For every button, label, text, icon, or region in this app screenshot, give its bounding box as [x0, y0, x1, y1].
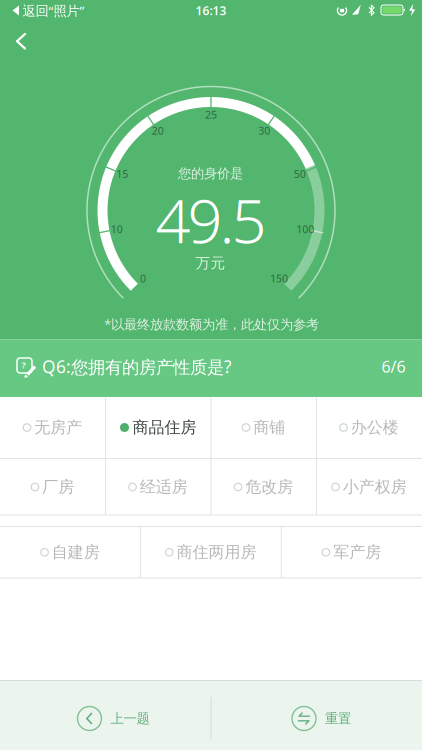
- staticText: 无房产: [34, 418, 82, 437]
- staticText: 万元: [195, 254, 225, 272]
- staticText: 49.5: [155, 179, 266, 260]
- staticText: 小产权房: [343, 477, 407, 497]
- staticText: 0: [140, 271, 146, 285]
- button[interactable]: 小产权房: [317, 459, 422, 515]
- staticText: Q6:您拥有的房产性质是?: [42, 355, 232, 378]
- staticText: 15: [116, 167, 128, 181]
- staticText: 您的身价是: [178, 165, 243, 182]
- button[interactable]: 办公楼: [317, 397, 422, 458]
- button[interactable]: 返回照片: [2, 0, 94, 20]
- staticText: 商品住房: [132, 418, 196, 437]
- staticText: 返回“照片”: [22, 2, 84, 19]
- staticText: 办公楼: [351, 418, 399, 437]
- button[interactable]: Back: [0, 0, 422, 750]
- staticText: 150: [270, 271, 288, 285]
- button[interactable]: 无房产: [0, 397, 105, 458]
- staticText: *以最终放款数额为准，此处仅为参考: [104, 315, 319, 333]
- staticText: 商住两用房: [176, 542, 256, 562]
- button[interactable]: 经适房: [106, 459, 211, 515]
- staticText: 厂房: [42, 477, 74, 497]
- staticText: 100: [296, 222, 314, 236]
- button[interactable]: 自建房: [0, 527, 140, 578]
- button[interactable]: 商住两用房: [141, 527, 281, 578]
- staticText: 上一题: [110, 710, 149, 727]
- staticText: 10: [111, 222, 123, 236]
- staticText: 50: [294, 167, 306, 181]
- staticText: 6/6: [381, 356, 405, 377]
- staticText: 16:13: [195, 2, 226, 18]
- staticText: 20: [152, 124, 164, 138]
- button[interactable]: 上一题: [43, 694, 183, 742]
- button[interactable]: 军产房: [282, 527, 422, 578]
- button[interactable]: 厂房: [0, 459, 105, 515]
- staticText: 军产房: [333, 542, 381, 562]
- button[interactable]: 商品住房: [106, 397, 211, 458]
- button[interactable]: 商铺: [211, 397, 316, 458]
- staticText: 自建房: [52, 542, 100, 562]
- staticText: 危改房: [245, 477, 293, 497]
- staticText: 30: [258, 124, 270, 138]
- staticText: 重置: [325, 710, 351, 727]
- staticText: 25: [205, 107, 217, 122]
- staticText: 商铺: [253, 418, 285, 437]
- button[interactable]: 危改房: [211, 459, 316, 515]
- staticText: 经适房: [140, 477, 188, 497]
- staticText: ?: [21, 359, 25, 371]
- button[interactable]: 重置: [261, 694, 381, 742]
